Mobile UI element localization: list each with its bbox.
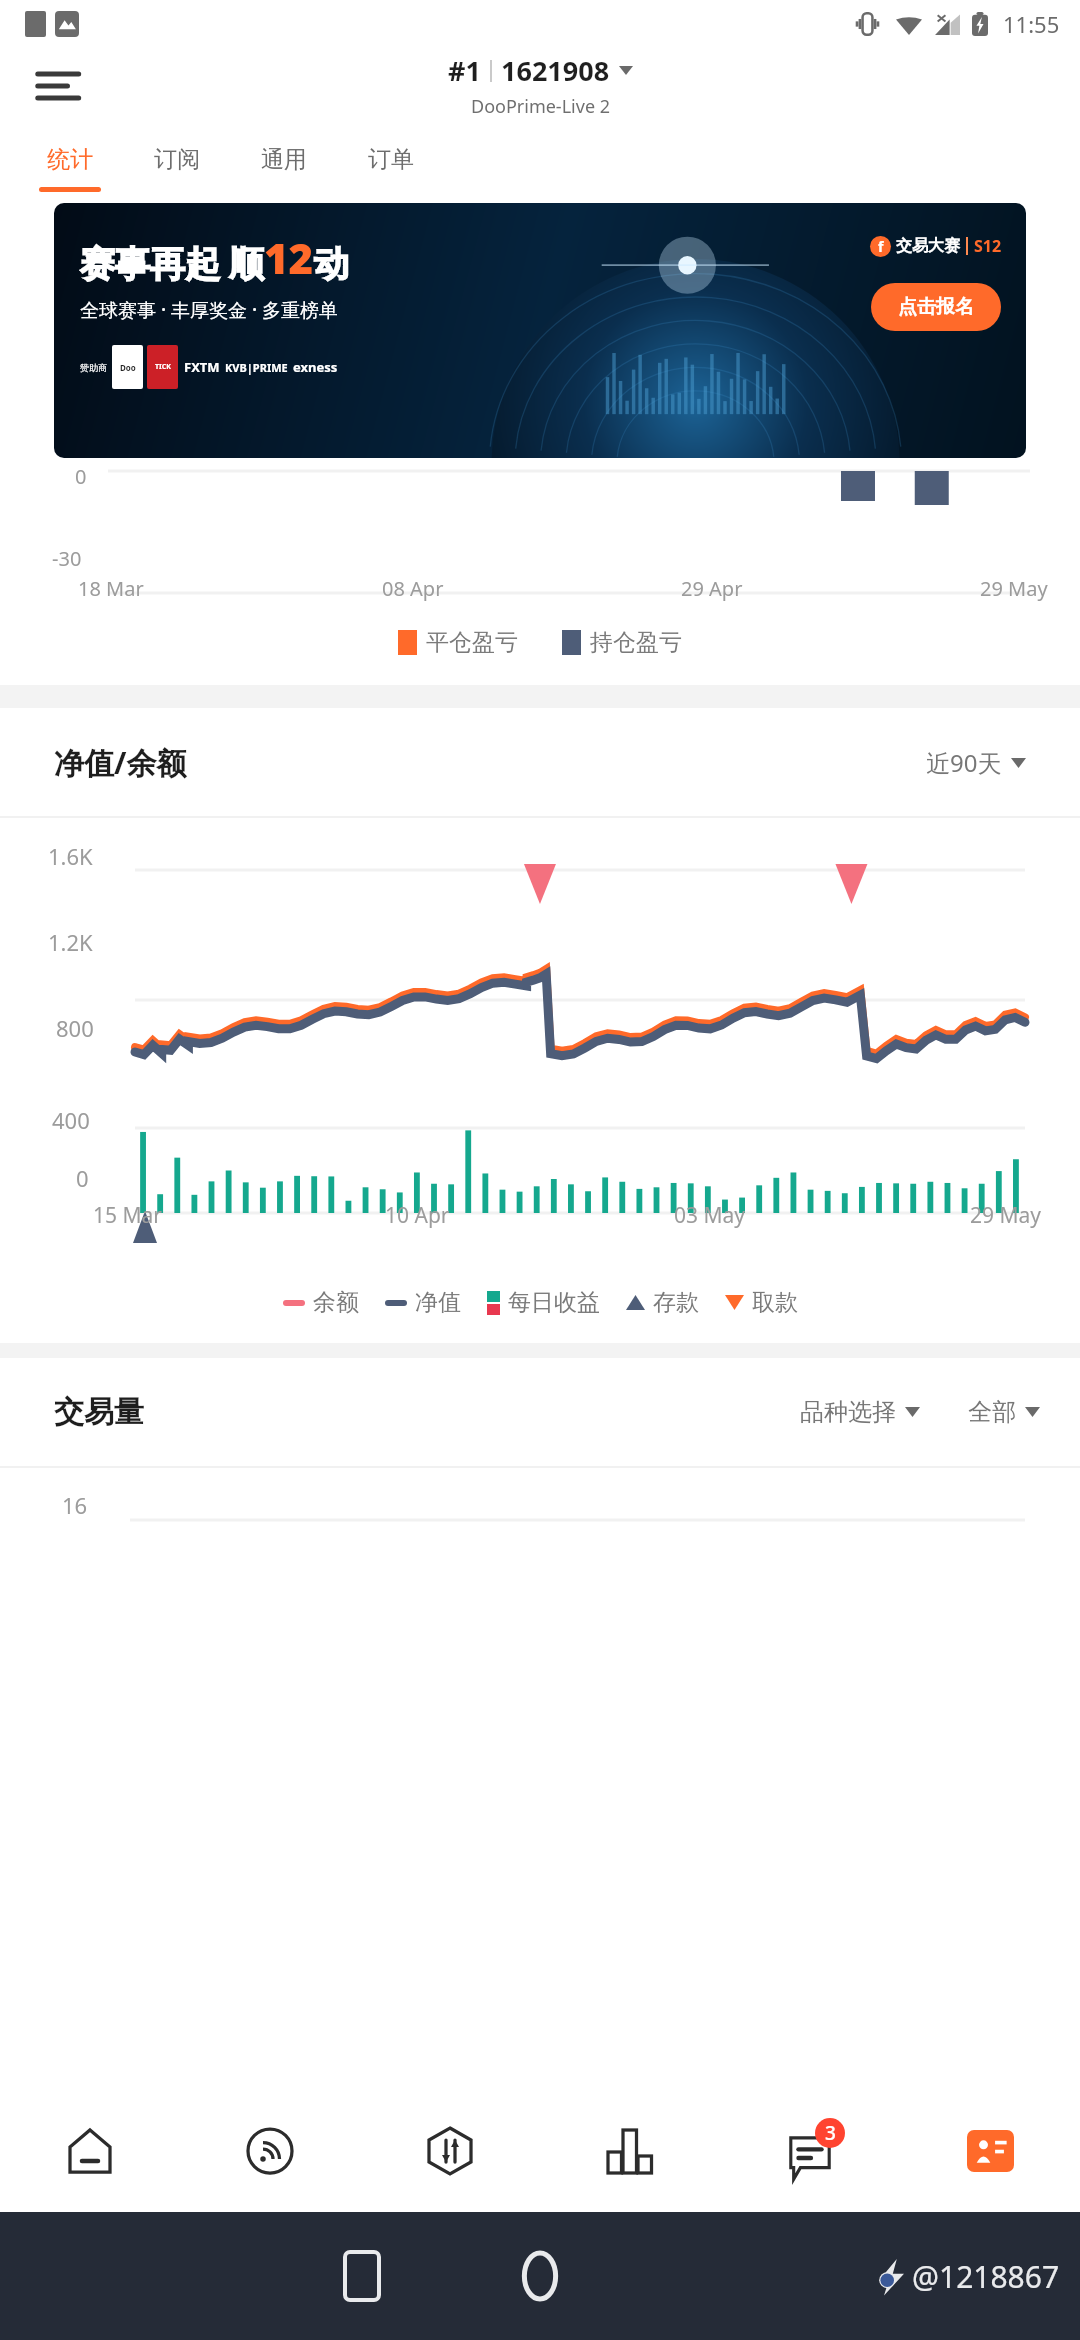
button[interactable]: 余额 <box>283 1288 359 1317</box>
button[interactable]: 持仓盈亏 <box>562 628 682 657</box>
button[interactable]: Home <box>0 2090 180 2212</box>
button[interactable]: 存款 <box>626 1288 699 1317</box>
staticText: 29 May <box>970 1201 1042 1230</box>
staticText: 1621908 <box>501 52 610 89</box>
staticText: 存款 <box>653 1288 699 1317</box>
button[interactable]: Profile <box>900 2090 1080 2212</box>
staticText: 800 <box>56 1013 94 1043</box>
staticText: 统计 <box>47 145 93 174</box>
staticText: 赞助商 <box>80 362 107 373</box>
button[interactable]: Messages <box>720 2090 900 2212</box>
button[interactable]: 赛事再起 <box>54 203 1026 458</box>
staticText: 近90天 <box>926 746 1002 779</box>
staticText: 净值/余额 <box>54 742 187 783</box>
staticText: 1.6K <box>48 841 93 871</box>
button[interactable]: Trade <box>360 2090 540 2212</box>
staticText: 订单 <box>368 145 414 174</box>
button[interactable]: Menu <box>35 62 91 110</box>
staticText: 29 Apr <box>681 575 743 602</box>
staticText: 08 Apr <box>382 575 444 602</box>
staticText: 品种选择 <box>800 1397 896 1427</box>
staticText: 交易量 <box>54 1393 144 1431</box>
staticText: TICK <box>155 362 171 372</box>
staticText: S12 <box>974 235 1002 257</box>
staticText: 平仓盈亏 <box>426 628 518 657</box>
staticText: 03 May <box>674 1201 746 1230</box>
staticText: 0 <box>76 1163 89 1193</box>
button[interactable]: #1 <box>448 52 633 119</box>
staticText: 0 <box>75 463 87 490</box>
staticText: 余额 <box>313 1288 359 1317</box>
staticText: 每日收益 <box>508 1288 600 1317</box>
button[interactable]: 平仓盈亏 <box>398 628 518 657</box>
staticText: 1.2K <box>48 927 93 957</box>
staticText: 全部 <box>968 1397 1016 1427</box>
button[interactable]: 全部 <box>968 1397 1040 1427</box>
staticText: 点击报名 <box>898 295 974 319</box>
staticText: 动 <box>314 242 349 286</box>
staticText: 11:55 <box>1003 9 1060 39</box>
staticText: 持仓盈亏 <box>590 628 682 657</box>
staticText: 10 Apr <box>385 1201 450 1230</box>
staticText: 18 Mar <box>78 575 144 602</box>
staticText: 3 <box>825 2120 836 2146</box>
staticText: 订阅 <box>154 145 200 174</box>
staticText: @1218867 <box>912 2256 1060 2297</box>
staticText: #1 <box>448 52 481 89</box>
staticText: f <box>878 237 884 256</box>
button[interactable]: 近90天 <box>926 746 1026 779</box>
staticText: 取款 <box>752 1288 798 1317</box>
button[interactable]: Stats <box>540 2090 720 2212</box>
staticText: 赛事再起 <box>80 242 220 286</box>
staticText: 交易大赛 <box>896 236 960 256</box>
button[interactable]: 统计 <box>16 124 123 194</box>
staticText: 12 <box>264 229 314 286</box>
staticText: KVB|PRIME <box>225 360 288 375</box>
button[interactable]: Recents <box>345 2252 379 2300</box>
staticText: 15 Mar <box>93 1201 162 1230</box>
button[interactable]: 点击报名 <box>871 283 1001 331</box>
button[interactable]: 每日收益 <box>487 1288 600 1317</box>
staticText: 16 <box>62 1490 88 1520</box>
staticText: DooPrime-Live 2 <box>471 94 611 119</box>
button[interactable]: 通用 <box>230 124 337 194</box>
button[interactable]: 订单 <box>337 124 444 194</box>
staticText: 全球赛事 · 丰厚奖金 · 多重榜单 <box>80 297 339 323</box>
staticText: FXTM <box>184 358 220 376</box>
staticText: 顺 <box>229 242 264 286</box>
staticText: 400 <box>52 1105 90 1135</box>
button[interactable]: Signals <box>180 2090 360 2212</box>
button[interactable]: Home <box>517 2253 563 2299</box>
staticText: Doo <box>120 362 136 373</box>
staticText: 净值 <box>415 1288 461 1317</box>
button[interactable]: 品种选择 <box>800 1397 920 1427</box>
button[interactable]: 取款 <box>725 1288 798 1317</box>
staticText: -30 <box>52 545 82 572</box>
staticText: 通用 <box>261 145 307 174</box>
button[interactable]: 订阅 <box>123 124 230 194</box>
button[interactable]: 净值 <box>385 1288 461 1317</box>
staticText: exness <box>293 358 338 376</box>
staticText: 29 May <box>980 575 1048 602</box>
